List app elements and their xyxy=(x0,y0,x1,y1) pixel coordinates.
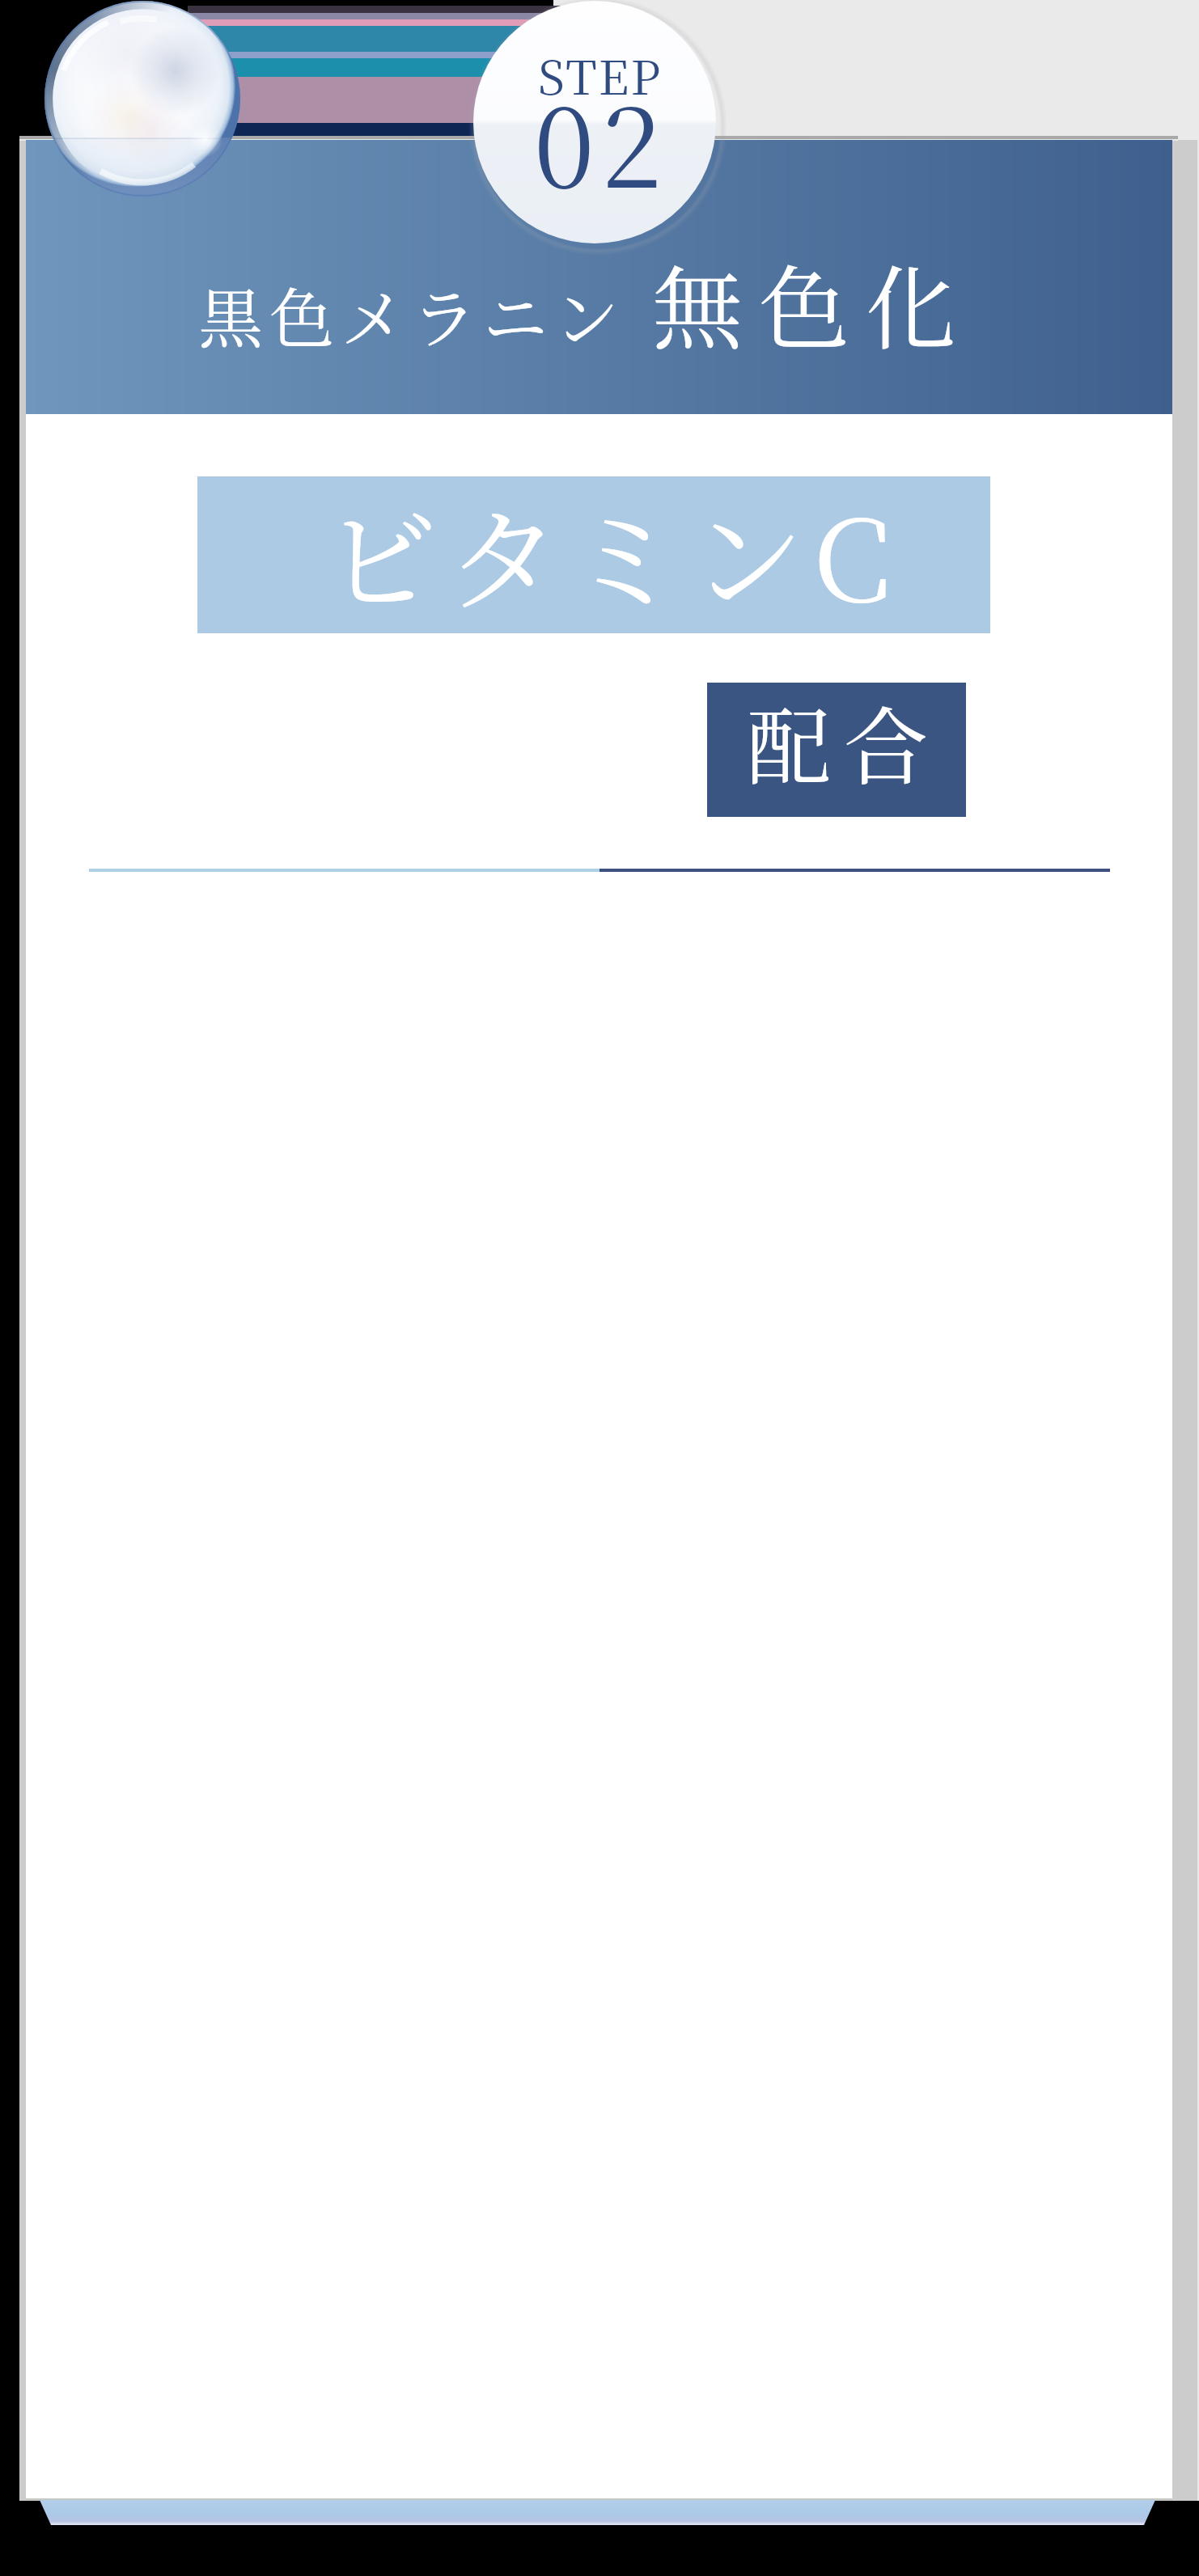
button[interactable] xyxy=(0,0,1199,2576)
